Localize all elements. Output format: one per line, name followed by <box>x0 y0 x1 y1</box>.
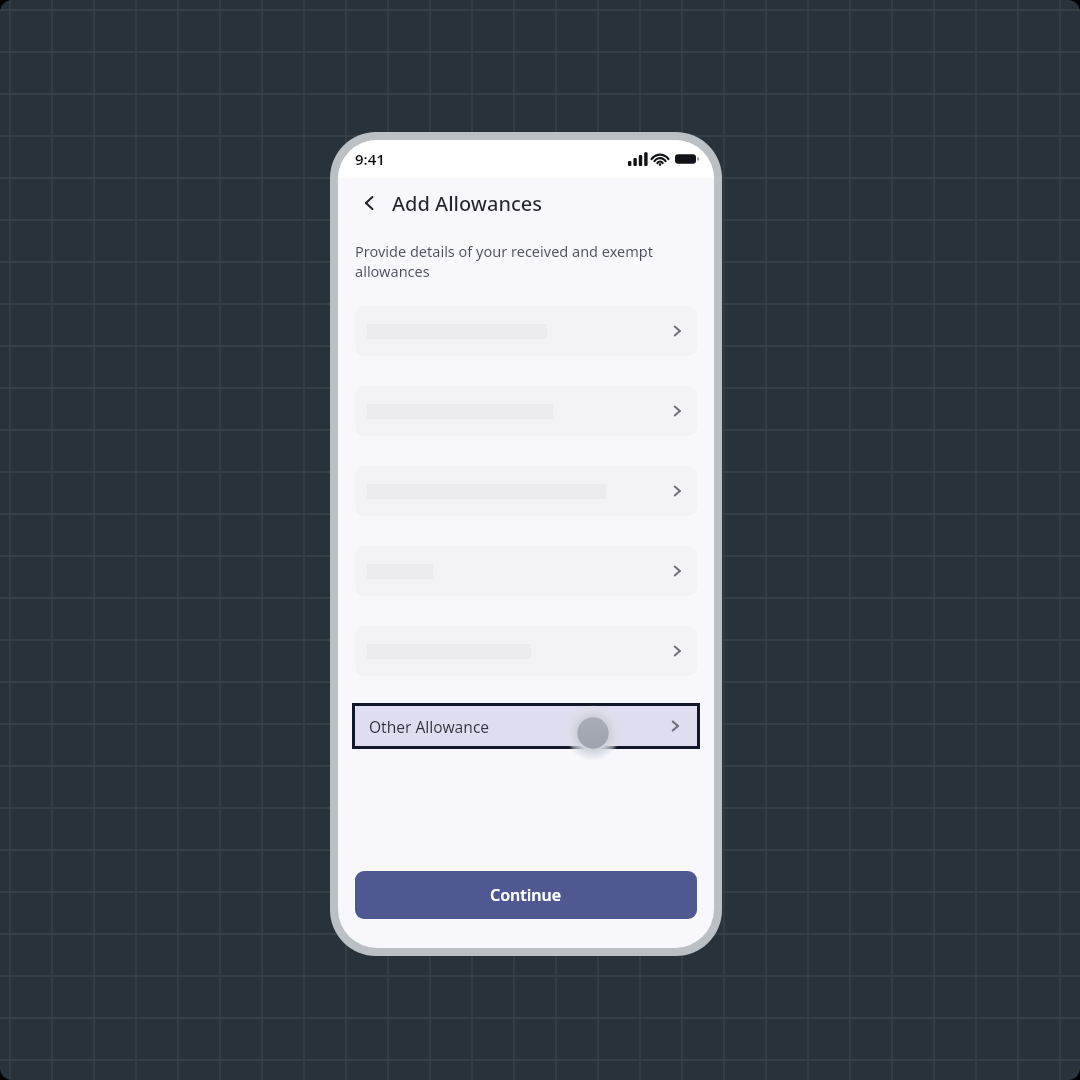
button[interactable]: Allowance item <box>355 546 697 596</box>
staticText: Other Allowance <box>369 716 490 737</box>
button[interactable]: Allowance item <box>355 466 697 516</box>
staticText: Provide details of your received and exe… <box>355 241 653 281</box>
button[interactable]: Allowance item <box>355 306 697 356</box>
button[interactable]: Continue <box>355 871 697 919</box>
button[interactable]: Back <box>352 185 388 221</box>
staticText: Continue <box>490 884 562 906</box>
button[interactable]: Allowance item <box>355 386 697 436</box>
staticText: Add Allowances <box>392 190 542 217</box>
button[interactable]: Other Allowance <box>355 706 697 746</box>
button[interactable]: Allowance item <box>355 626 697 676</box>
staticText: 9:41 <box>355 149 385 169</box>
